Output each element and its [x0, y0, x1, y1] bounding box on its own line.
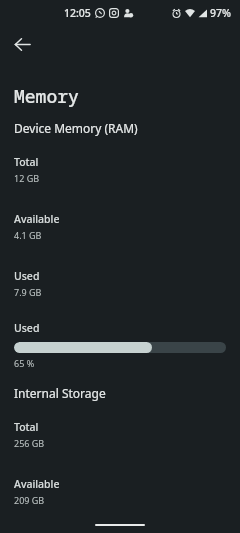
staticText: Memory — [14, 84, 79, 109]
button[interactable]: Total — [0, 151, 240, 188]
staticText: 4.1 GB — [14, 229, 42, 241]
button[interactable]: Back — [2, 26, 42, 62]
staticText: Total — [14, 155, 39, 169]
staticText: 209 GB — [14, 494, 45, 506]
staticText: Device Memory (RAM) — [14, 120, 138, 136]
staticText: Total — [14, 420, 39, 434]
staticText: 12:05 — [64, 6, 91, 20]
staticText: Used — [14, 321, 40, 335]
staticText: Available — [14, 212, 60, 226]
staticText: Used — [14, 269, 40, 283]
staticText: 256 GB — [14, 437, 45, 449]
button[interactable]: Total — [0, 416, 240, 453]
staticText: 7.9 GB — [14, 286, 42, 298]
staticText: 12 GB — [14, 172, 40, 184]
staticText: Available — [14, 477, 60, 491]
staticText: Internal Storage — [14, 385, 106, 401]
button[interactable]: Used — [0, 265, 240, 302]
staticText: 97% — [210, 6, 231, 20]
button[interactable]: Available — [0, 473, 240, 510]
button[interactable]: Available — [0, 208, 240, 245]
staticText: 65 % — [14, 357, 224, 369]
